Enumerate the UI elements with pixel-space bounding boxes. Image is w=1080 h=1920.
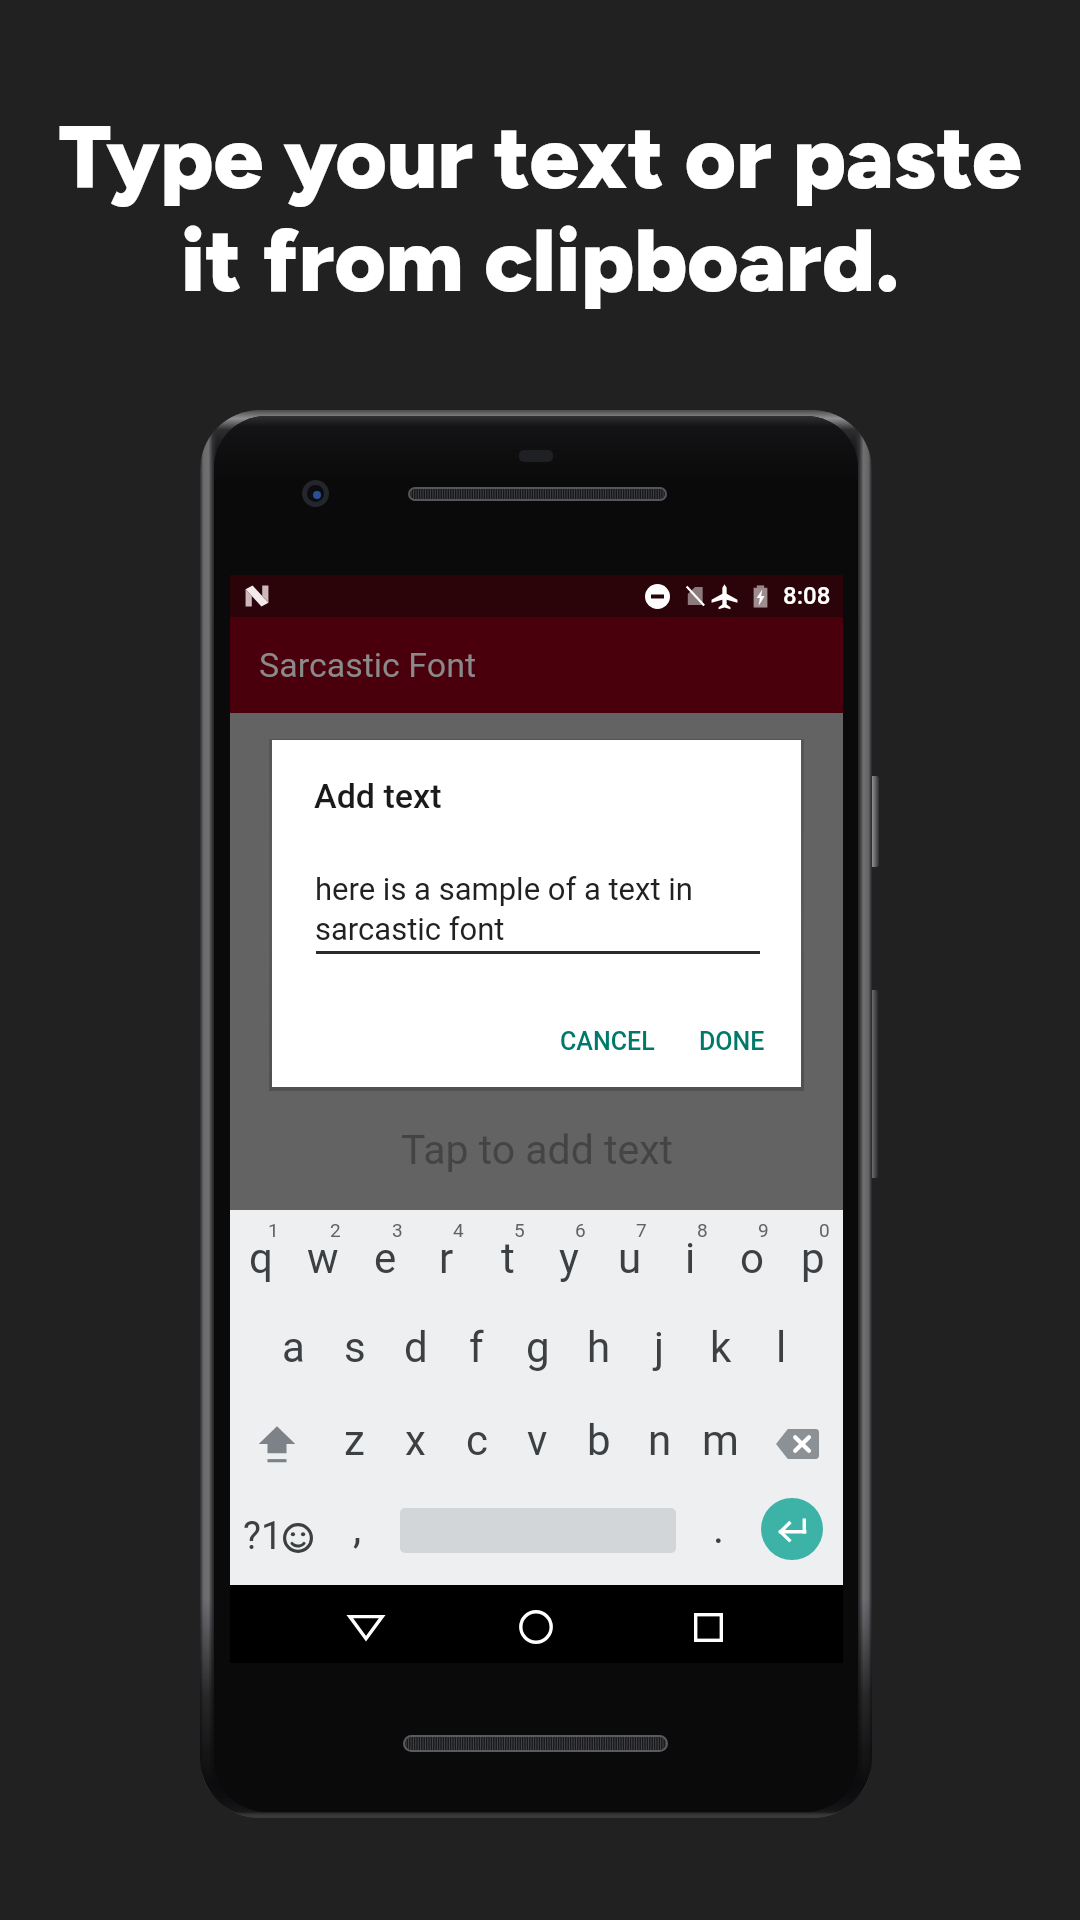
staticText: CANCEL (560, 1027, 655, 1056)
staticText: 0 (819, 1219, 830, 1241)
staticText: g (526, 1323, 550, 1372)
button[interactable]: 3 (354, 1210, 416, 1305)
staticText: q (249, 1234, 273, 1283)
staticText: 5 (514, 1219, 525, 1241)
button[interactable]: 1 (230, 1210, 292, 1305)
staticText: Tap to add text (401, 1126, 673, 1174)
button[interactable]: 2 (292, 1210, 354, 1305)
button[interactable]: 0 (782, 1210, 843, 1305)
button[interactable]: . (677, 1487, 740, 1585)
button[interactable]: n (629, 1400, 690, 1487)
button[interactable]: z (323, 1400, 385, 1487)
staticText: p (801, 1234, 825, 1283)
button[interactable]: 8 (660, 1210, 721, 1305)
staticText: . (713, 1504, 725, 1553)
button[interactable]: Recents (672, 1585, 744, 1663)
button[interactable]: m (690, 1400, 751, 1487)
staticText: m (702, 1416, 739, 1465)
staticText: r (439, 1234, 454, 1283)
staticText: f (469, 1323, 484, 1372)
button[interactable]: x (385, 1400, 446, 1487)
button[interactable]: g (507, 1305, 568, 1400)
staticText: d (404, 1323, 428, 1372)
button[interactable]: Back (327, 1585, 405, 1663)
staticText: n (648, 1416, 672, 1465)
button[interactable]: c (446, 1400, 507, 1487)
button[interactable]: k (690, 1305, 751, 1400)
button[interactable]: Home (500, 1585, 572, 1663)
staticText: 3 (392, 1219, 403, 1241)
staticText: 7 (636, 1219, 647, 1241)
button[interactable]: Backspace (751, 1400, 843, 1487)
staticText: 9 (758, 1219, 769, 1241)
staticText: u (618, 1234, 642, 1283)
button[interactable]: 4 (416, 1210, 477, 1305)
staticText: b (587, 1416, 611, 1465)
staticText: c (466, 1416, 488, 1465)
staticText: a (282, 1323, 305, 1372)
staticText: x (405, 1416, 426, 1465)
staticText: v (527, 1416, 548, 1465)
staticText: h (587, 1323, 611, 1372)
staticText: , (353, 1504, 362, 1553)
staticText: 6 (575, 1219, 586, 1241)
staticText: here is a sample of a text in sarcastic … (315, 871, 693, 948)
staticText: DONE (699, 1027, 765, 1056)
staticText: ?1 (243, 1514, 283, 1559)
button[interactable]: s (324, 1305, 385, 1400)
button[interactable]: 7 (599, 1210, 660, 1305)
staticText: Type your text or paste it from clipboar… (0, 104, 1080, 313)
button[interactable]: CANCEL (544, 1015, 671, 1068)
staticText: e (374, 1234, 397, 1283)
button[interactable]: a (262, 1305, 324, 1400)
button[interactable]: Symbols and emoji (230, 1487, 326, 1585)
button[interactable]: j (629, 1305, 690, 1400)
staticText: w (307, 1234, 339, 1283)
staticText: 4 (453, 1219, 464, 1241)
button[interactable]: v (507, 1400, 568, 1487)
staticText: Sarcastic Font (259, 645, 477, 685)
staticText: Add text (314, 776, 442, 816)
button[interactable]: b (568, 1400, 629, 1487)
staticText: k (710, 1323, 732, 1372)
staticText: i (685, 1234, 696, 1283)
staticText: 2 (330, 1219, 341, 1241)
button[interactable]: , (326, 1487, 389, 1585)
button[interactable]: l (751, 1305, 812, 1400)
staticText: s (344, 1323, 366, 1372)
button[interactable]: f (446, 1305, 507, 1400)
button[interactable]: DONE (683, 1015, 781, 1068)
button[interactable]: 5 (477, 1210, 538, 1305)
staticText: o (740, 1234, 764, 1283)
button[interactable]: 6 (538, 1210, 599, 1305)
staticText: 8:08 (783, 582, 831, 610)
staticText: j (654, 1323, 665, 1372)
staticText: 1 (268, 1219, 279, 1241)
button[interactable]: h (568, 1305, 629, 1400)
button[interactable]: Shift (230, 1400, 323, 1487)
button[interactable]: 9 (721, 1210, 782, 1305)
button[interactable]: d (385, 1305, 446, 1400)
staticText: 8 (697, 1219, 708, 1241)
button[interactable]: Enter (761, 1498, 823, 1560)
staticText: l (776, 1323, 787, 1372)
staticText: y (559, 1234, 579, 1283)
staticText: z (344, 1416, 365, 1465)
staticText: t (501, 1234, 515, 1283)
